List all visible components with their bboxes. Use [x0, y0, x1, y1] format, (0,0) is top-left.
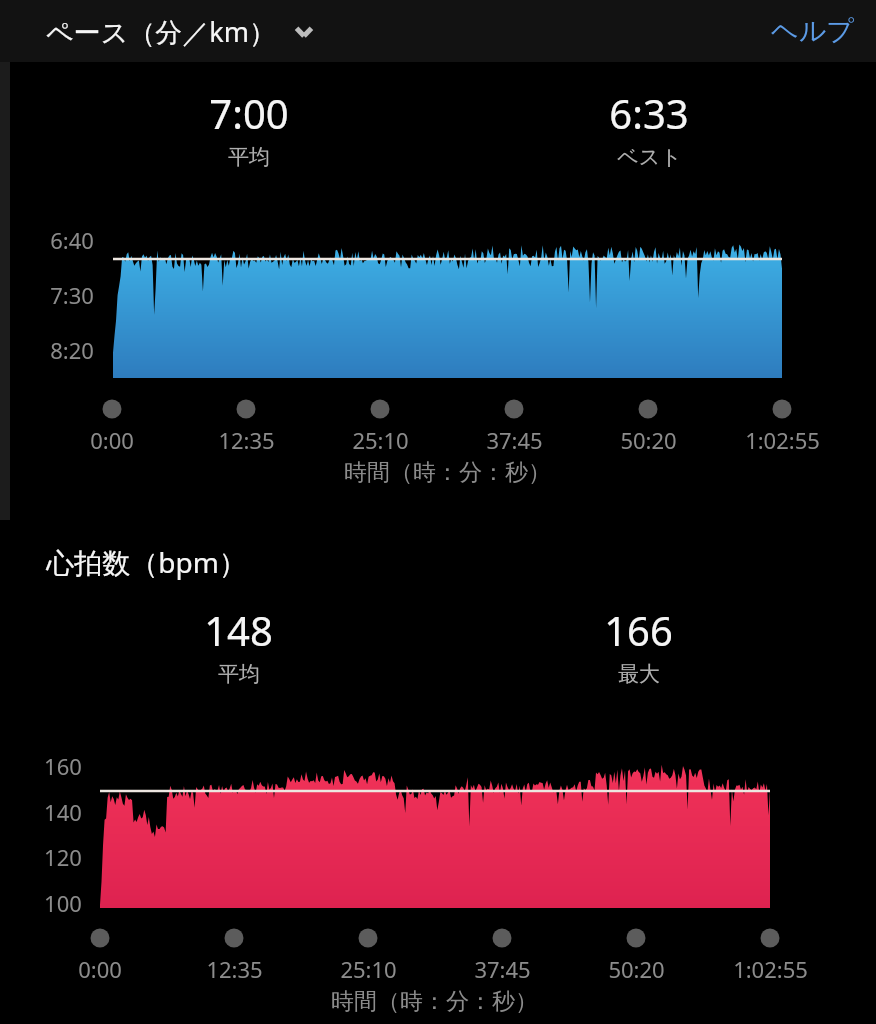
staticText: 37:45: [486, 425, 543, 455]
staticText: 50:20: [608, 954, 665, 984]
staticText: 7:00: [209, 86, 289, 140]
staticText: ペース（分／km）: [46, 13, 276, 50]
staticText: 1:02:55: [733, 954, 808, 984]
staticText: 100: [44, 888, 82, 918]
staticText: 160: [44, 751, 82, 781]
staticText: 25:10: [340, 954, 397, 984]
staticText: 1:02:55: [745, 425, 820, 455]
staticText: 37:45: [474, 954, 531, 984]
staticText: 0:00: [90, 425, 134, 455]
staticText: 平均: [228, 144, 270, 170]
staticText: 148: [204, 603, 273, 657]
staticText: 12:35: [218, 425, 275, 455]
staticText: 120: [44, 842, 82, 872]
staticText: 50:20: [620, 425, 677, 455]
staticText: 0:00: [78, 954, 122, 984]
button[interactable]: ヘルプ: [765, 6, 860, 56]
staticText: 140: [44, 797, 82, 827]
staticText: 時間（時：分：秒）: [331, 987, 538, 1016]
staticText: 25:10: [352, 425, 409, 455]
staticText: 8:20: [50, 335, 94, 365]
staticText: 7:30: [50, 280, 94, 310]
staticText: ベスト: [617, 144, 682, 170]
staticText: 時間（時：分：秒）: [344, 458, 551, 487]
button[interactable]: ペース（分／km）: [40, 5, 322, 58]
staticText: 心拍数（bpm）: [46, 543, 247, 581]
staticText: 6:33: [609, 86, 689, 140]
staticText: 166: [604, 603, 673, 657]
staticText: 12:35: [206, 954, 263, 984]
other: Change metric: [292, 20, 316, 44]
staticText: 平均: [218, 661, 260, 687]
staticText: 6:40: [50, 225, 94, 255]
staticText: ヘルプ: [771, 14, 854, 48]
staticText: 最大: [618, 661, 660, 687]
